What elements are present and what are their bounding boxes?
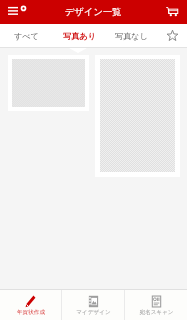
button[interactable]: 写真なし [105, 24, 157, 47]
button[interactable]: 宛名スキャン [125, 290, 187, 320]
button[interactable]: Cart [163, 0, 187, 24]
staticText: デザイン一覧 [65, 6, 122, 18]
staticText: 年賀状作成 [17, 309, 45, 316]
button[interactable]: すべて [0, 24, 53, 47]
staticText: マイデザイン [76, 309, 111, 316]
staticText: 写真なし [115, 31, 148, 41]
button[interactable]: マイデザイン [62, 290, 124, 320]
staticText: 宛名スキャン [139, 309, 174, 316]
button[interactable] [8, 55, 89, 111]
button[interactable] [95, 55, 180, 177]
button[interactable]: 写真あり [53, 24, 105, 47]
button[interactable]: Favorites [157, 24, 187, 47]
staticText: すべて [14, 31, 39, 41]
button[interactable]: 年賀状作成 [0, 290, 61, 320]
staticText: 写真あり [63, 31, 96, 41]
button[interactable]: Menu [0, 0, 28, 24]
